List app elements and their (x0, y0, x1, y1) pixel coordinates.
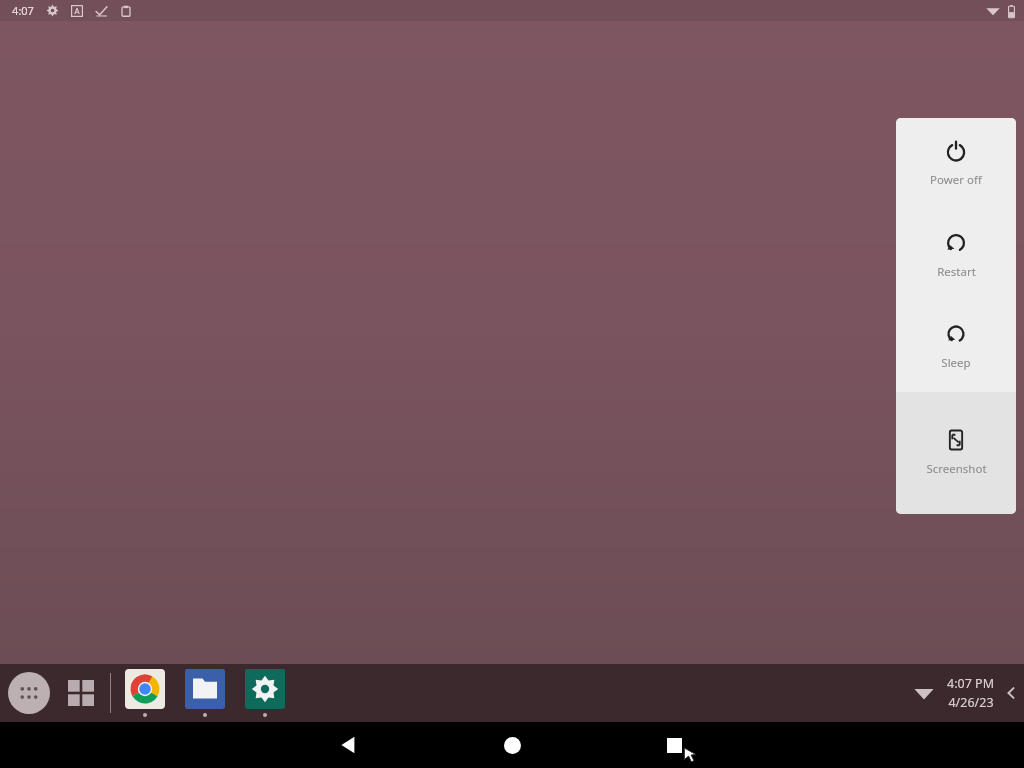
staticText: 4:07 PM (947, 675, 994, 692)
staticText: Power off (930, 172, 982, 188)
staticText: 4:07 (12, 3, 34, 18)
button[interactable]: All apps (8, 672, 50, 714)
button[interactable]: Screenshot (896, 392, 1016, 514)
button[interactable]: Sleep (896, 302, 1016, 392)
button[interactable]: Recent apps (651, 722, 697, 768)
button[interactable]: Restart (896, 210, 1016, 302)
button[interactable]: Chrome (123, 669, 167, 717)
button[interactable]: Wi-Fi (907, 676, 941, 710)
button[interactable]: Files (183, 669, 227, 717)
staticText: 4/26/23 (948, 694, 994, 711)
button[interactable]: Power off (896, 118, 1016, 210)
button[interactable]: Home (489, 722, 535, 768)
staticText: Sleep (941, 355, 971, 371)
button[interactable]: Back (326, 722, 372, 768)
button[interactable]: Expand notifications (1002, 684, 1020, 702)
button[interactable]: 4:07 PM (947, 675, 994, 711)
staticText: Screenshot (926, 461, 987, 477)
staticText: Restart (937, 264, 976, 280)
button[interactable]: Settings (243, 669, 287, 717)
button[interactable]: Show windows (62, 674, 100, 712)
